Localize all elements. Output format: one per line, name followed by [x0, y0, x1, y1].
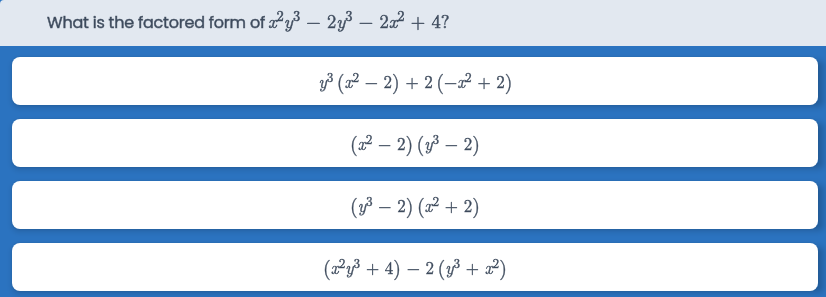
- staticText: (y3 − 2) (x2 + 2): [350, 191, 480, 219]
- button[interactable]: (x2y3 + 4) − 2 (y3 + x2): [12, 243, 818, 291]
- staticText: What is the factored form of x2y3 − 2y3 …: [47, 5, 450, 33]
- button[interactable]: (y3 − 2) (x2 + 2): [12, 181, 818, 229]
- button[interactable]: (x2 − 2) (y3 − 2): [12, 119, 818, 167]
- staticText: (x2 − 2) (y3 − 2): [350, 129, 480, 157]
- staticText: (x2 − 2) (y3 − 2): [350, 129, 480, 157]
- staticText: (x2y3 + 4) − 2 (y3 + x2): [323, 253, 507, 281]
- staticText: y3 (x2 − 2) + 2 (−x2 + 2): [318, 67, 513, 95]
- staticText: (x2y3 + 4) − 2 (y3 + x2): [323, 253, 507, 281]
- staticText: y3 (x2 − 2) + 2 (−x2 + 2): [318, 67, 513, 95]
- staticText: (y3 − 2) (x2 + 2): [350, 191, 480, 219]
- staticText: What is the factored form of x2y3 − 2y3 …: [47, 5, 450, 33]
- button[interactable]: y3 (x2 − 2) + 2 (−x2 + 2): [12, 57, 818, 105]
